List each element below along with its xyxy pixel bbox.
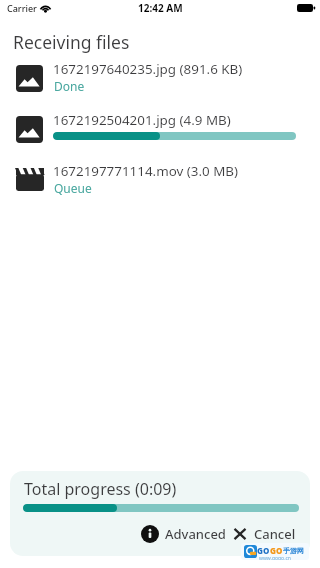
staticText: 1672192504201.jpg (4.9 MB) [53,111,231,129]
staticText: Cancel [254,525,296,543]
staticText: Carrier [7,2,37,14]
button[interactable]: 1672197640235.jpg (891.6 KB) [0,52,320,103]
staticText: GO [257,545,270,556]
button[interactable]: 1672192504201.jpg (4.9 MB) [0,103,320,154]
button[interactable]: 1672197771114.mov (3.0 MB) [0,154,320,205]
staticText: 1672197640235.jpg (891.6 KB) [53,60,243,78]
button[interactable]: Cancel [230,520,300,548]
staticText: 1672197771114.mov (3.0 MB) [53,162,239,180]
staticText: GO [270,545,283,556]
staticText: www.gogo.cn [259,555,291,560]
staticText: 手游网 [283,546,304,555]
button[interactable]: Advanced [137,520,230,548]
staticText: Done [54,78,85,94]
staticText: Receiving files [13,30,130,54]
staticText: Total progress (0:09) [24,478,177,500]
staticText: Advanced [165,525,226,543]
staticText: Queue [54,180,92,196]
staticText: 12:42 AM [138,1,183,15]
